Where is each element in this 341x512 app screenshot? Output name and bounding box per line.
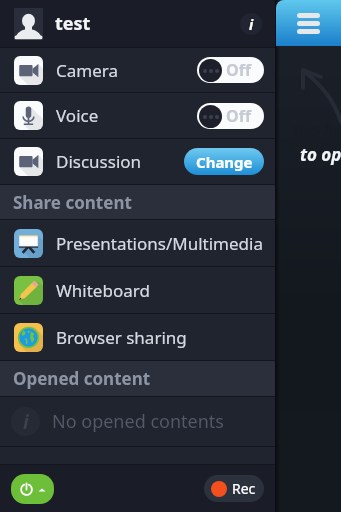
staticText: Voice — [56, 104, 99, 127]
staticText: Camera — [56, 59, 118, 82]
staticText: Opened content — [13, 367, 151, 390]
staticText: i — [249, 15, 254, 34]
button[interactable]: test — [0, 0, 275, 47]
button[interactable]: Off — [197, 57, 264, 83]
staticText: to ope — [300, 143, 341, 166]
button[interactable]: Whiteboard — [0, 267, 275, 313]
staticText: Off — [226, 105, 252, 127]
button[interactable]: Camera — [0, 48, 275, 92]
staticText: Whiteboard — [56, 279, 150, 302]
button[interactable]: Voice — [0, 93, 275, 138]
button[interactable]: Info — [240, 13, 262, 35]
staticText: Browser sharing — [56, 326, 187, 349]
staticText: Change — [196, 152, 253, 172]
button[interactable]: Menu — [276, 0, 341, 46]
staticText: Share content — [13, 191, 132, 214]
button[interactable]: Rec — [204, 475, 264, 502]
staticText: Rec — [232, 479, 256, 498]
staticText: Presentations/Multimedia — [56, 232, 263, 255]
staticText: Discussion — [56, 150, 142, 173]
button[interactable]: Power — [11, 474, 54, 504]
button[interactable]: Off — [197, 103, 264, 129]
staticText: i — [23, 409, 29, 435]
staticText: Off — [226, 59, 252, 81]
button[interactable]: Discussion — [0, 139, 275, 184]
button[interactable]: Presentations/Multimedia — [0, 220, 275, 266]
button[interactable]: Change — [184, 148, 264, 175]
staticText: No opened contents — [52, 409, 224, 434]
button[interactable]: Browser sharing — [0, 314, 275, 360]
staticText: test — [55, 11, 91, 36]
